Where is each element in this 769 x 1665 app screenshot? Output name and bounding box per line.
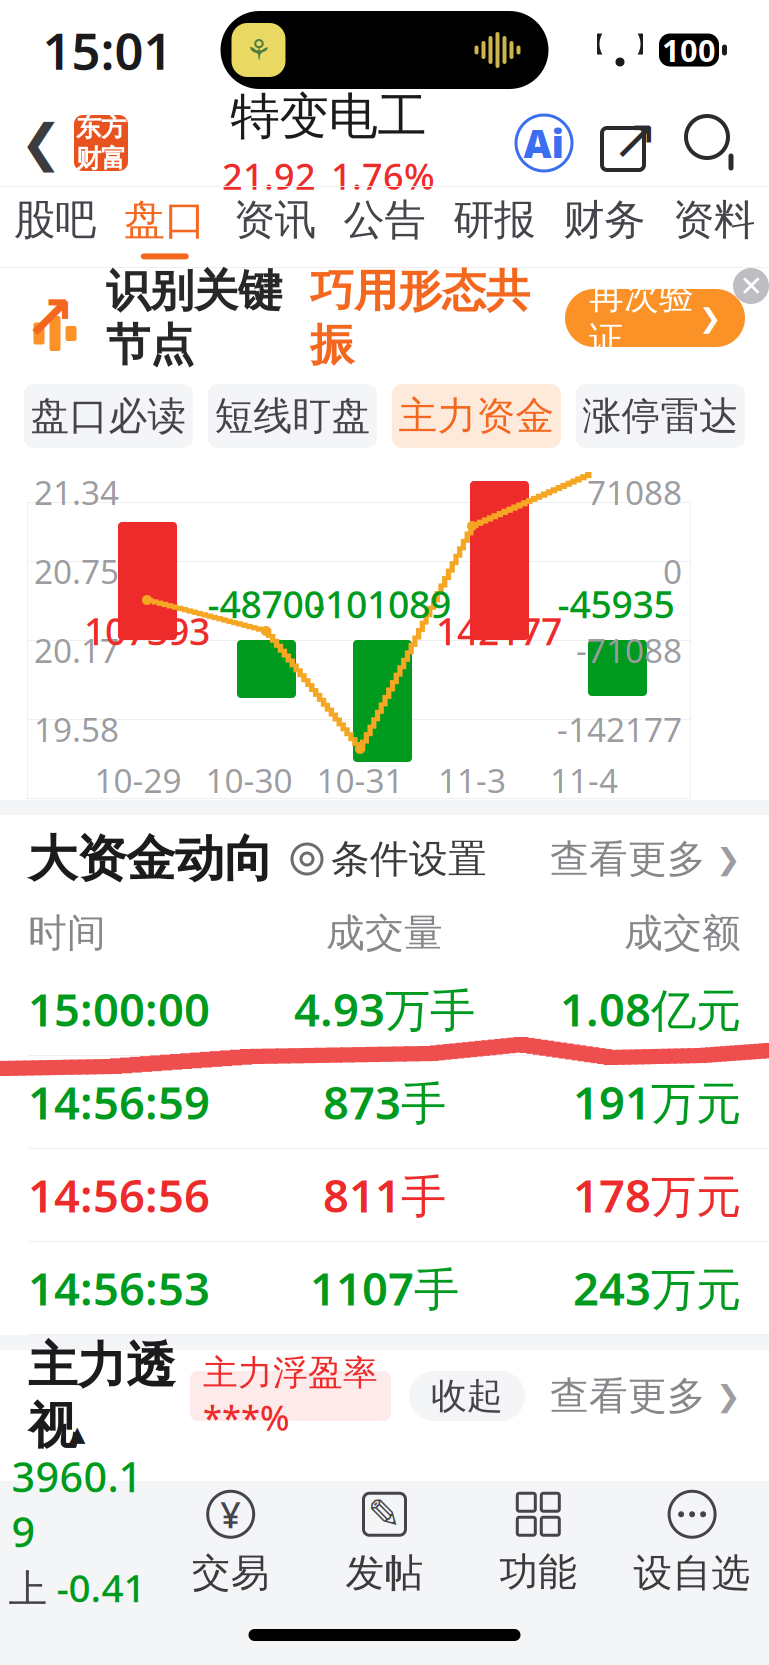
button[interactable]: 功能 — [461, 1481, 615, 1605]
button[interactable]: 资讯 — [220, 187, 330, 267]
staticText: ❯ — [716, 1379, 741, 1413]
button[interactable]: 查看更多 — [550, 1372, 741, 1420]
button[interactable]: 14:56:53 — [0, 1242, 769, 1334]
staticText: -48700 — [207, 579, 324, 629]
staticText: 识别关键节点 — [106, 264, 282, 372]
button[interactable]: AI assistant — [515, 114, 573, 172]
staticText: 14:56:56 — [28, 1165, 210, 1225]
staticText: 20.17 — [34, 628, 119, 672]
staticText: 短线盯盘 — [214, 392, 370, 440]
staticText: 10-29 — [94, 758, 181, 802]
staticText: 14:56:59 — [28, 1072, 210, 1132]
staticText: 71088 — [587, 470, 682, 514]
staticText: 股吧 — [14, 195, 96, 245]
staticText: ❯ — [699, 303, 721, 333]
staticText: 10-30 — [205, 758, 292, 802]
staticText: 查看更多 — [550, 835, 706, 883]
staticText: 查看更多 — [550, 1372, 706, 1420]
staticText: 1.76% — [331, 152, 435, 200]
staticText: 盘口必读 — [30, 392, 186, 440]
button[interactable]: ¥ — [154, 1481, 308, 1605]
staticText: 特变电工 — [230, 86, 426, 147]
button[interactable]: 盘口必读 — [24, 384, 193, 448]
staticText: 涨停雷达 — [582, 392, 738, 440]
staticText: 主力浮盈率***% — [203, 1352, 378, 1440]
staticText: ▲ — [69, 1422, 85, 1446]
staticText: Ai — [523, 117, 564, 169]
staticText: 11-4 — [550, 758, 618, 802]
button[interactable]: 资料 — [659, 187, 769, 267]
staticText: ❯ — [716, 842, 741, 876]
staticText: 成交量 — [326, 909, 443, 957]
staticText: 142177 — [436, 606, 562, 656]
button[interactable]: 设自选 — [615, 1481, 769, 1605]
button[interactable]: 14:56:56 — [0, 1149, 769, 1241]
staticText: 研报 — [453, 195, 535, 245]
staticText: 设自选 — [634, 1549, 751, 1597]
staticText: -142177 — [557, 707, 682, 751]
button[interactable]: 查看更多 — [550, 835, 741, 883]
staticText: 主力资金 — [398, 392, 554, 440]
staticText: 财富 — [76, 143, 126, 174]
staticText: ⚘ — [245, 33, 271, 67]
button[interactable]: 主力浮盈率***% — [190, 1371, 391, 1421]
staticText: 107393 — [84, 606, 210, 656]
staticText: 主力透视 — [28, 1335, 175, 1457]
button[interactable]: 公告 — [330, 187, 439, 267]
staticText: ↗ — [24, 283, 75, 353]
staticText: 191万元 — [573, 1072, 741, 1132]
staticText: 成交额 — [624, 909, 741, 957]
button[interactable]: Share — [601, 115, 657, 171]
staticText: 条件设置 — [331, 835, 487, 883]
staticText: 再次验证 — [589, 275, 694, 361]
button[interactable]: 股吧 — [0, 187, 110, 267]
staticText: -45935 — [557, 579, 674, 629]
button[interactable]: 再次验证 — [565, 289, 745, 347]
staticText: ❮ — [20, 114, 62, 172]
button[interactable]: ✎ — [308, 1481, 461, 1605]
button[interactable]: 涨停雷达 — [576, 384, 745, 448]
staticText: ✕ — [739, 270, 762, 302]
staticText: 3960.19 — [11, 1449, 142, 1559]
button[interactable]: Back — [0, 114, 128, 172]
staticText: ↗ — [611, 107, 658, 171]
button[interactable]: 14:56:59 — [0, 1056, 769, 1148]
button[interactable]: Close promotion — [733, 268, 769, 304]
staticText: 发帖 — [345, 1549, 423, 1597]
staticText: 15:01 — [42, 16, 172, 84]
staticText: 公告 — [343, 195, 425, 245]
staticText: 811手 — [323, 1165, 446, 1225]
staticText: 交易 — [192, 1549, 270, 1597]
button[interactable]: Search — [685, 115, 741, 171]
button[interactable]: 财务 — [549, 187, 659, 267]
staticText: 1.08亿元 — [560, 979, 741, 1039]
staticText: 19.58 — [34, 707, 119, 751]
button[interactable]: 条件设置 — [273, 835, 487, 883]
staticText: 上证 — [8, 1565, 47, 1660]
staticText: 0 — [663, 549, 682, 593]
staticText: 873手 — [323, 1072, 446, 1132]
button[interactable]: ▲ — [0, 1481, 154, 1605]
staticText: 21.92 — [222, 152, 316, 200]
button[interactable]: 15:00:00 — [0, 963, 769, 1055]
staticText: 100 — [662, 30, 716, 70]
staticText: 21.34 — [34, 470, 119, 514]
button[interactable]: 研报 — [439, 187, 549, 267]
staticText: 大资金动向 — [28, 829, 273, 889]
staticText: -0.41% — [56, 1562, 145, 1664]
button[interactable]: 收起 — [409, 1371, 525, 1421]
button[interactable]: 主力资金 — [392, 384, 561, 448]
staticText: 20.75 — [34, 549, 119, 593]
staticText: -101089 — [313, 579, 451, 629]
staticText: 功能 — [499, 1548, 577, 1596]
staticText: 1107手 — [310, 1258, 459, 1318]
staticText: 10-31 — [316, 758, 403, 802]
staticText: 15:00:00 — [28, 979, 210, 1039]
staticText: 东方 — [76, 112, 126, 143]
staticText: 243万元 — [573, 1258, 741, 1318]
button[interactable]: 短线盯盘 — [208, 384, 377, 448]
staticText: 盘口 — [124, 195, 206, 245]
button[interactable]: 盘口 — [110, 187, 220, 267]
staticText: 时间 — [28, 909, 106, 957]
staticText: 178万元 — [573, 1165, 741, 1225]
